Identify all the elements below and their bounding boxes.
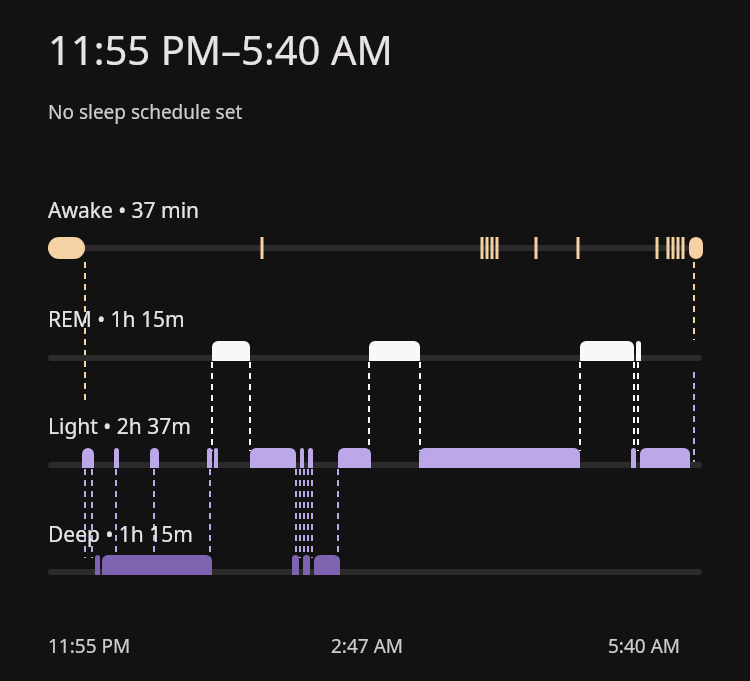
button[interactable]: Sleep stages chart: [0, 0, 750, 681]
